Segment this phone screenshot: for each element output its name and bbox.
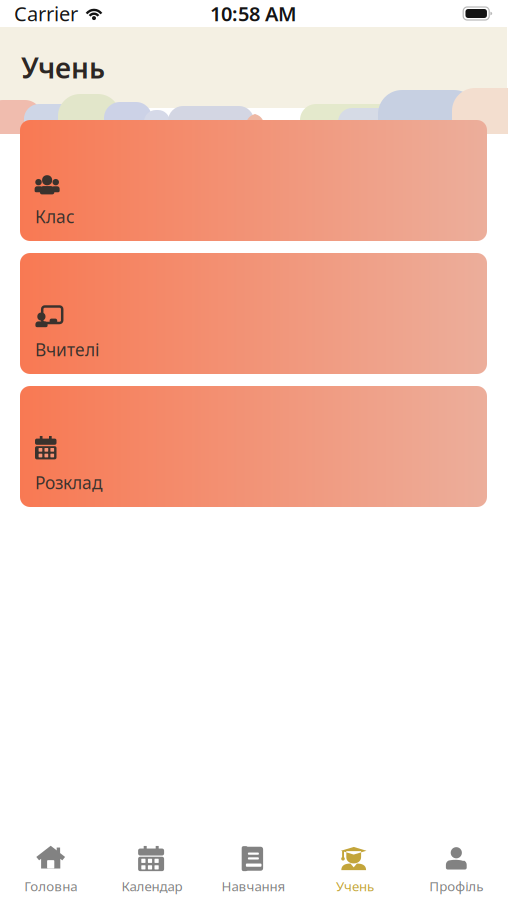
button[interactable]: Учень <box>304 830 406 900</box>
staticText: Учень <box>21 49 105 86</box>
staticText: Профіль <box>429 877 483 895</box>
staticText: Клас <box>35 205 75 228</box>
button[interactable]: Клас <box>20 120 487 241</box>
staticText: Розклад <box>35 471 103 494</box>
staticText: Календар <box>122 877 183 895</box>
button[interactable]: Вчителі <box>20 253 487 374</box>
button[interactable]: Розклад <box>20 386 487 507</box>
button[interactable]: Календар <box>101 830 203 900</box>
staticText: Вчителі <box>35 338 99 361</box>
staticText: Головна <box>24 877 77 895</box>
button[interactable]: Профіль <box>406 830 507 900</box>
staticText: Учень <box>336 877 374 895</box>
button[interactable]: Навчання <box>203 830 304 900</box>
button[interactable]: Головна <box>0 830 101 900</box>
staticText: 10:58 AM <box>210 0 297 27</box>
staticText: Навчання <box>221 877 285 895</box>
staticText: Carrier <box>14 0 78 27</box>
